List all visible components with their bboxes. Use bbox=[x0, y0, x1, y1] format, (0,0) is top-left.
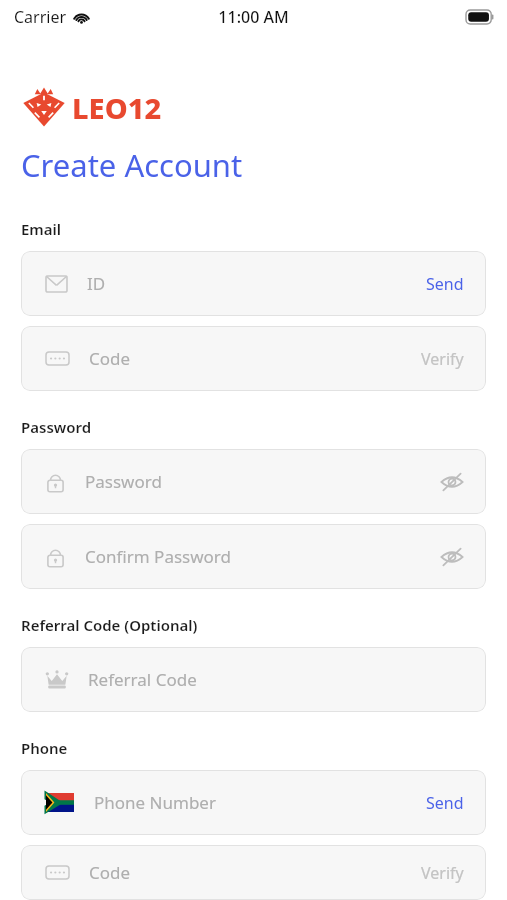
button[interactable]: Verify email code bbox=[409, 340, 476, 378]
staticText: Code bbox=[89, 347, 131, 370]
staticText: Phone bbox=[21, 738, 68, 758]
button[interactable]: Confirm Password bbox=[21, 524, 486, 589]
staticText: Password bbox=[21, 417, 92, 437]
staticText: Phone Number bbox=[94, 791, 216, 814]
staticText: ID bbox=[87, 272, 106, 295]
staticText: Verify bbox=[421, 862, 464, 884]
button[interactable]: Code bbox=[21, 326, 486, 391]
button[interactable]: Verify phone code bbox=[409, 854, 476, 892]
staticText: Create Account bbox=[21, 144, 243, 186]
staticText: Send bbox=[426, 273, 464, 295]
button[interactable]: Referral Code bbox=[21, 647, 486, 712]
staticText: Referral Code bbox=[88, 668, 197, 691]
staticText: LEO12 bbox=[72, 88, 162, 127]
staticText: Verify bbox=[421, 348, 464, 370]
staticText: Send bbox=[426, 792, 464, 814]
staticText: 11:00 AM bbox=[218, 6, 289, 28]
button[interactable]: Password bbox=[21, 449, 486, 514]
staticText: Email bbox=[21, 219, 62, 239]
button[interactable]: Send phone verification code bbox=[414, 784, 476, 822]
button[interactable]: Send email verification code bbox=[414, 265, 476, 303]
staticText: Code bbox=[89, 861, 131, 884]
button[interactable]: Phone Number bbox=[21, 770, 486, 835]
button[interactable]: Show password bbox=[430, 462, 474, 502]
button[interactable]: Code bbox=[21, 845, 486, 900]
button[interactable]: Show confirm password bbox=[430, 537, 474, 577]
staticText: Carrier bbox=[14, 6, 67, 28]
staticText: Confirm Password bbox=[85, 545, 231, 568]
staticText: Password bbox=[85, 470, 162, 493]
button[interactable]: ID bbox=[21, 251, 486, 316]
staticText: Referral Code (Optional) bbox=[21, 615, 198, 635]
